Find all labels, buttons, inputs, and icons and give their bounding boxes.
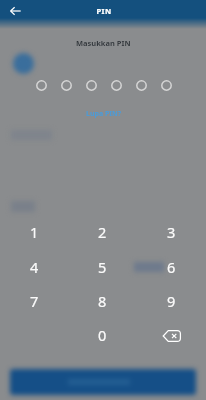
staticText: 3 <box>167 222 176 242</box>
other: Backspace <box>162 330 181 342</box>
staticText: 6 <box>167 257 176 277</box>
button[interactable]: 1 <box>0 215 68 249</box>
button[interactable]: 4 <box>0 249 68 284</box>
staticText: 5 <box>98 257 107 277</box>
button[interactable]: 8 <box>68 284 137 318</box>
button[interactable]: Back <box>4 0 26 21</box>
button[interactable]: 6 <box>137 249 206 284</box>
button[interactable]: 0 <box>68 318 137 352</box>
button[interactable]: 9 <box>137 284 206 318</box>
button[interactable]: 5 <box>68 249 137 284</box>
button[interactable]: Backspace <box>137 318 206 352</box>
button[interactable]: 3 <box>137 215 206 249</box>
staticText: Masukkan PIN <box>76 38 131 48</box>
staticText: 7 <box>30 291 39 311</box>
staticText: 9 <box>167 291 176 311</box>
button[interactable] <box>10 369 196 393</box>
staticText: PIN <box>96 6 112 16</box>
button[interactable]: 2 <box>68 215 137 249</box>
staticText: 0 <box>98 325 107 345</box>
staticText: 8 <box>98 291 107 311</box>
staticText: 1 <box>30 222 39 242</box>
staticText: 2 <box>98 222 107 242</box>
button[interactable]: 7 <box>0 284 68 318</box>
staticText: 4 <box>30 257 39 277</box>
button[interactable]: Lupa PIN? <box>86 109 121 119</box>
